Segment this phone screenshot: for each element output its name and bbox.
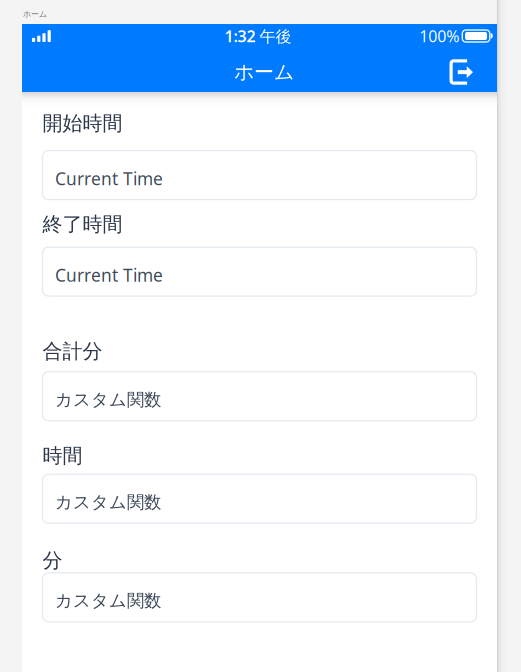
staticText: カスタム関数 — [55, 492, 161, 513]
staticText: 開始時間 — [42, 111, 122, 136]
staticText: ホーム — [234, 60, 294, 84]
staticText: 100% — [419, 25, 459, 47]
staticText: 分 — [42, 548, 62, 573]
staticText: Current Time — [55, 167, 163, 190]
button[interactable]: カスタム関数 — [42, 573, 476, 622]
staticText: カスタム関数 — [55, 389, 161, 410]
staticText: 終了時間 — [42, 212, 122, 237]
staticText: Current Time — [55, 264, 163, 287]
button[interactable]: Current Time — [42, 151, 476, 200]
staticText: ホーム — [23, 9, 47, 19]
button[interactable]: Sign out — [439, 56, 497, 88]
staticText: カスタム関数 — [55, 590, 161, 611]
staticText: 1:32 午後 — [225, 25, 292, 47]
button[interactable]: Current Time — [42, 247, 476, 296]
staticText: 合計分 — [42, 339, 102, 364]
button[interactable]: カスタム関数 — [42, 372, 476, 421]
staticText: 時間 — [42, 443, 82, 468]
button[interactable]: カスタム関数 — [42, 474, 476, 523]
